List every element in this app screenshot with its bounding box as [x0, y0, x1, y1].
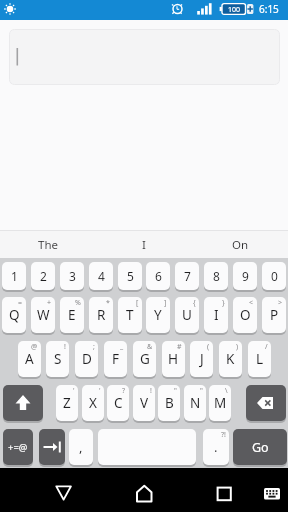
staticText: ?	[122, 386, 126, 396]
button[interactable]: ,	[69, 429, 93, 465]
staticText: &	[147, 342, 153, 352]
button[interactable]: R	[89, 297, 113, 333]
button[interactable]	[98, 429, 196, 465]
button[interactable]: K	[219, 341, 242, 377]
button[interactable]	[124, 474, 164, 508]
staticText: +	[47, 298, 52, 308]
staticText: Z	[63, 394, 71, 412]
button[interactable]: C	[107, 385, 129, 421]
staticText: #	[177, 342, 182, 352]
button[interactable]	[256, 474, 288, 508]
staticText: T	[126, 306, 134, 324]
button[interactable]: 6	[146, 262, 170, 290]
button[interactable]: S	[46, 341, 69, 377]
staticText: I	[142, 237, 146, 253]
staticText: Y	[154, 306, 162, 324]
staticText: 9	[242, 268, 249, 284]
button[interactable]	[204, 474, 244, 508]
button[interactable]: P	[262, 297, 286, 333]
button[interactable]: I	[204, 297, 228, 333]
staticText: X	[89, 394, 97, 412]
button[interactable]: M	[209, 385, 231, 421]
button[interactable]: U	[175, 297, 199, 333]
button[interactable]: X	[82, 385, 104, 421]
staticText: !	[64, 342, 66, 352]
button[interactable]: 1	[2, 262, 26, 290]
staticText: ]	[164, 298, 167, 308]
staticText: E	[68, 306, 76, 324]
staticText: N	[190, 394, 201, 412]
button[interactable]	[44, 474, 84, 508]
button[interactable]: V	[133, 385, 155, 421]
button[interactable]: The	[0, 231, 96, 258]
button[interactable]: N	[184, 385, 206, 421]
staticText: 3	[69, 268, 76, 284]
button[interactable]: A	[18, 341, 41, 377]
staticText: On	[232, 237, 249, 253]
button[interactable]: F	[104, 341, 127, 377]
staticText: "	[174, 386, 177, 396]
button[interactable]: 9	[233, 262, 257, 290]
staticText: S	[54, 350, 62, 368]
button[interactable]: Z	[56, 385, 78, 421]
button[interactable]: +=@	[3, 429, 33, 465]
staticText: G	[140, 350, 150, 368]
button[interactable]: I	[96, 231, 192, 258]
button[interactable]	[39, 429, 65, 465]
button[interactable]: B	[158, 385, 180, 421]
button[interactable]: D	[75, 341, 98, 377]
button[interactable]: On	[192, 231, 288, 258]
staticText: I	[214, 306, 219, 324]
staticText: W	[37, 306, 50, 324]
staticText: K	[226, 350, 235, 368]
staticText: +=@	[8, 441, 28, 454]
button[interactable]: Y	[146, 297, 170, 333]
staticText: 1	[11, 268, 18, 284]
staticText: /	[265, 342, 268, 352]
staticText: *	[106, 298, 110, 308]
button[interactable]: G	[133, 341, 156, 377]
staticText: [	[136, 298, 139, 308]
staticText: The	[38, 237, 58, 253]
staticText: J	[200, 350, 204, 368]
button[interactable]: T	[118, 297, 142, 333]
button[interactable]: 2	[31, 262, 55, 290]
staticText: %	[75, 298, 81, 308]
staticText: >	[278, 298, 283, 308]
button[interactable]: 7	[175, 262, 199, 290]
button[interactable]: W	[31, 297, 55, 333]
staticText: O	[240, 306, 251, 324]
button[interactable]: H	[162, 341, 185, 377]
staticText: 100	[228, 5, 241, 15]
staticText: ?!	[221, 430, 226, 440]
staticText: <	[249, 298, 254, 308]
button[interactable]: E	[60, 297, 84, 333]
button[interactable]: J	[190, 341, 213, 377]
button[interactable]: 4	[89, 262, 113, 290]
button[interactable]: L	[248, 341, 271, 377]
staticText: (	[207, 342, 210, 352]
staticText: B	[165, 394, 174, 412]
staticText: Q	[9, 306, 20, 324]
staticText: =	[18, 298, 23, 308]
staticText: A	[25, 350, 34, 368]
button[interactable]	[9, 29, 280, 85]
button[interactable]: .	[203, 429, 229, 465]
button[interactable]: 8	[204, 262, 228, 290]
staticText: ;	[93, 342, 95, 352]
button[interactable]	[3, 385, 43, 421]
staticText: P	[270, 306, 279, 324]
button[interactable]: 0	[262, 262, 286, 290]
button[interactable]: 3	[60, 262, 84, 290]
button[interactable]	[246, 385, 286, 421]
staticText: 7	[184, 268, 191, 284]
staticText: '	[99, 386, 101, 396]
staticText: Go	[252, 439, 269, 456]
button[interactable]: Go	[233, 429, 287, 465]
button[interactable]: O	[233, 297, 257, 333]
button[interactable]: Q	[2, 297, 26, 333]
staticText: 8	[213, 268, 220, 284]
staticText: 2	[40, 268, 47, 284]
staticText: 0	[271, 268, 278, 284]
button[interactable]: 5	[118, 262, 142, 290]
